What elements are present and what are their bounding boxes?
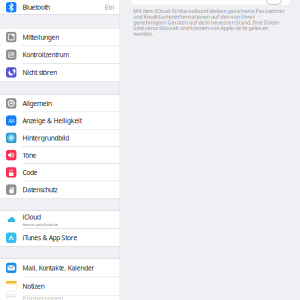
staticText: Mitteilungen bbox=[22, 33, 59, 42]
staticText: Ein bbox=[105, 3, 114, 12]
staticText: Erinnerungen bbox=[22, 294, 63, 300]
button[interactable]: Mitteilungen bbox=[0, 28, 120, 46]
button[interactable]: Code bbox=[0, 164, 120, 181]
button[interactable]: iCloud bbox=[0, 211, 120, 228]
button[interactable]: Mail, Kontakte, Kalender bbox=[0, 259, 120, 277]
button[interactable]: Erinnerungen bbox=[0, 295, 120, 300]
button[interactable]: Notizen bbox=[0, 277, 120, 295]
staticText: thomas.pole@web.de bbox=[22, 222, 58, 227]
staticText: Code bbox=[22, 168, 38, 177]
button[interactable]: AA bbox=[0, 112, 120, 129]
button[interactable]: Allgemein bbox=[0, 95, 120, 112]
button[interactable]: Hintergrundbild bbox=[0, 129, 120, 146]
staticText: iTunes & App Store bbox=[22, 233, 77, 242]
button[interactable]: iCloud-Schlüsselbund ein- oder ausschalt… bbox=[266, 0, 281, 4]
staticText: Hintergrundbild bbox=[22, 133, 69, 142]
staticText: AA bbox=[8, 117, 14, 124]
staticText: Bluetooth bbox=[22, 3, 50, 12]
staticText: Nicht stören bbox=[22, 68, 57, 77]
staticText: Notizen bbox=[22, 282, 45, 291]
button[interactable]: Töne bbox=[0, 147, 120, 164]
staticText: iCloud bbox=[22, 212, 41, 221]
button[interactable]: Datenschutz bbox=[0, 181, 120, 198]
staticText: Kontrollzentrum bbox=[22, 50, 69, 59]
button[interactable]: Kontrollzentrum bbox=[0, 46, 120, 63]
button[interactable]: Nicht stören bbox=[0, 64, 120, 81]
button[interactable]: Bluetooth bbox=[0, 0, 120, 14]
staticText: Datenschutz bbox=[22, 185, 57, 194]
staticText: Anzeige & Helligkeit bbox=[22, 116, 82, 125]
staticText: Mail, Kontakte, Kalender bbox=[22, 263, 95, 272]
button[interactable]: iTunes & App Store bbox=[0, 229, 120, 246]
staticText: Mit dem iCloud-Schlüsselbund bleiben ges… bbox=[133, 7, 284, 37]
staticText: Töne bbox=[22, 151, 37, 160]
staticText: Allgemein bbox=[22, 99, 52, 108]
